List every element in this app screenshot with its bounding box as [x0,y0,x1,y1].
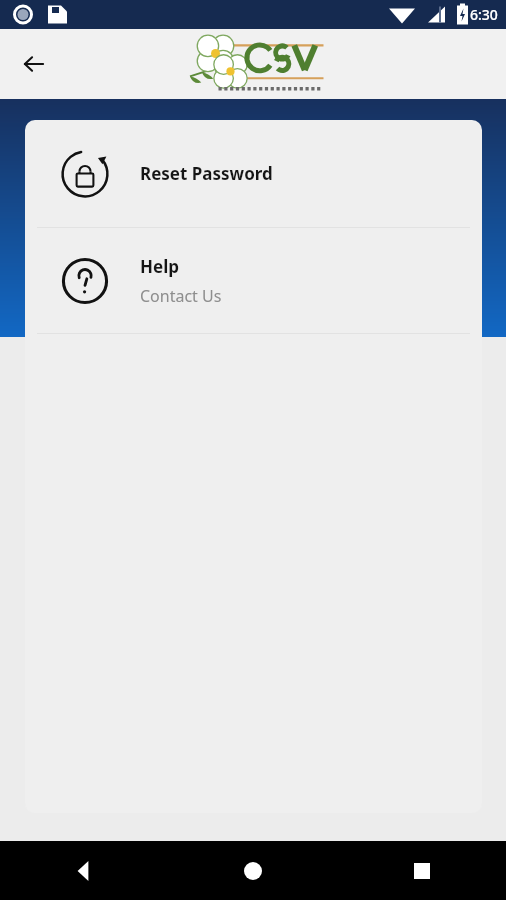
button[interactable]: Recent apps [337,841,506,900]
button[interactable]: Reset Password [25,120,482,227]
staticText: 6:30 [470,5,498,24]
other: Help [57,253,113,309]
button[interactable]: Back [0,841,168,900]
staticText: Reset Password [140,162,273,185]
staticText: Contact Us [140,285,222,307]
other: Reset Password [57,146,113,202]
button[interactable]: Back [10,40,58,88]
button[interactable]: Home [168,841,337,900]
button[interactable]: Help [25,228,482,333]
staticText: Help [140,255,179,278]
